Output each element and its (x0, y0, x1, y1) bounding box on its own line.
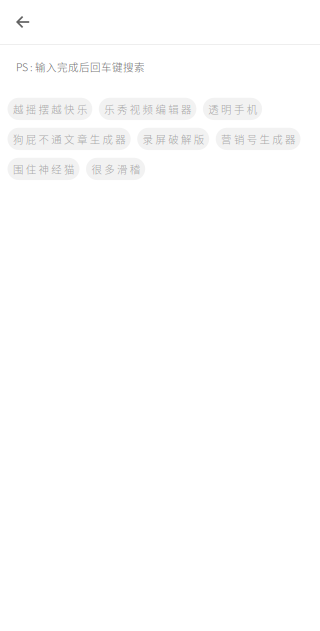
button[interactable]: 录屏破解版 (137, 128, 209, 150)
button[interactable]: Back (0, 0, 44, 44)
button[interactable]: 围住神经猫 (7, 158, 79, 180)
button[interactable]: 营销号生成器 (216, 128, 300, 150)
staticText: 透明手机 (208, 101, 257, 116)
button[interactable]: 透明手机 (203, 98, 262, 120)
staticText: 营销号生成器 (221, 131, 295, 146)
staticText: 很多滑稽 (91, 161, 140, 176)
staticText: 越摇摆越快乐 (13, 101, 87, 116)
staticText: 乐秀视频编辑器 (104, 101, 191, 116)
staticText: 狗屁不通文章生成器 (13, 131, 125, 146)
staticText: PS : 输入完成后回车键搜索 (16, 59, 145, 74)
button[interactable]: 狗屁不通文章生成器 (7, 128, 131, 150)
staticText: 围住神经猫 (13, 161, 74, 176)
button[interactable]: 很多滑稽 (86, 158, 145, 180)
button[interactable]: 乐秀视频编辑器 (99, 98, 196, 120)
button[interactable]: 越摇摆越快乐 (7, 98, 92, 120)
staticText: 录屏破解版 (143, 131, 204, 146)
